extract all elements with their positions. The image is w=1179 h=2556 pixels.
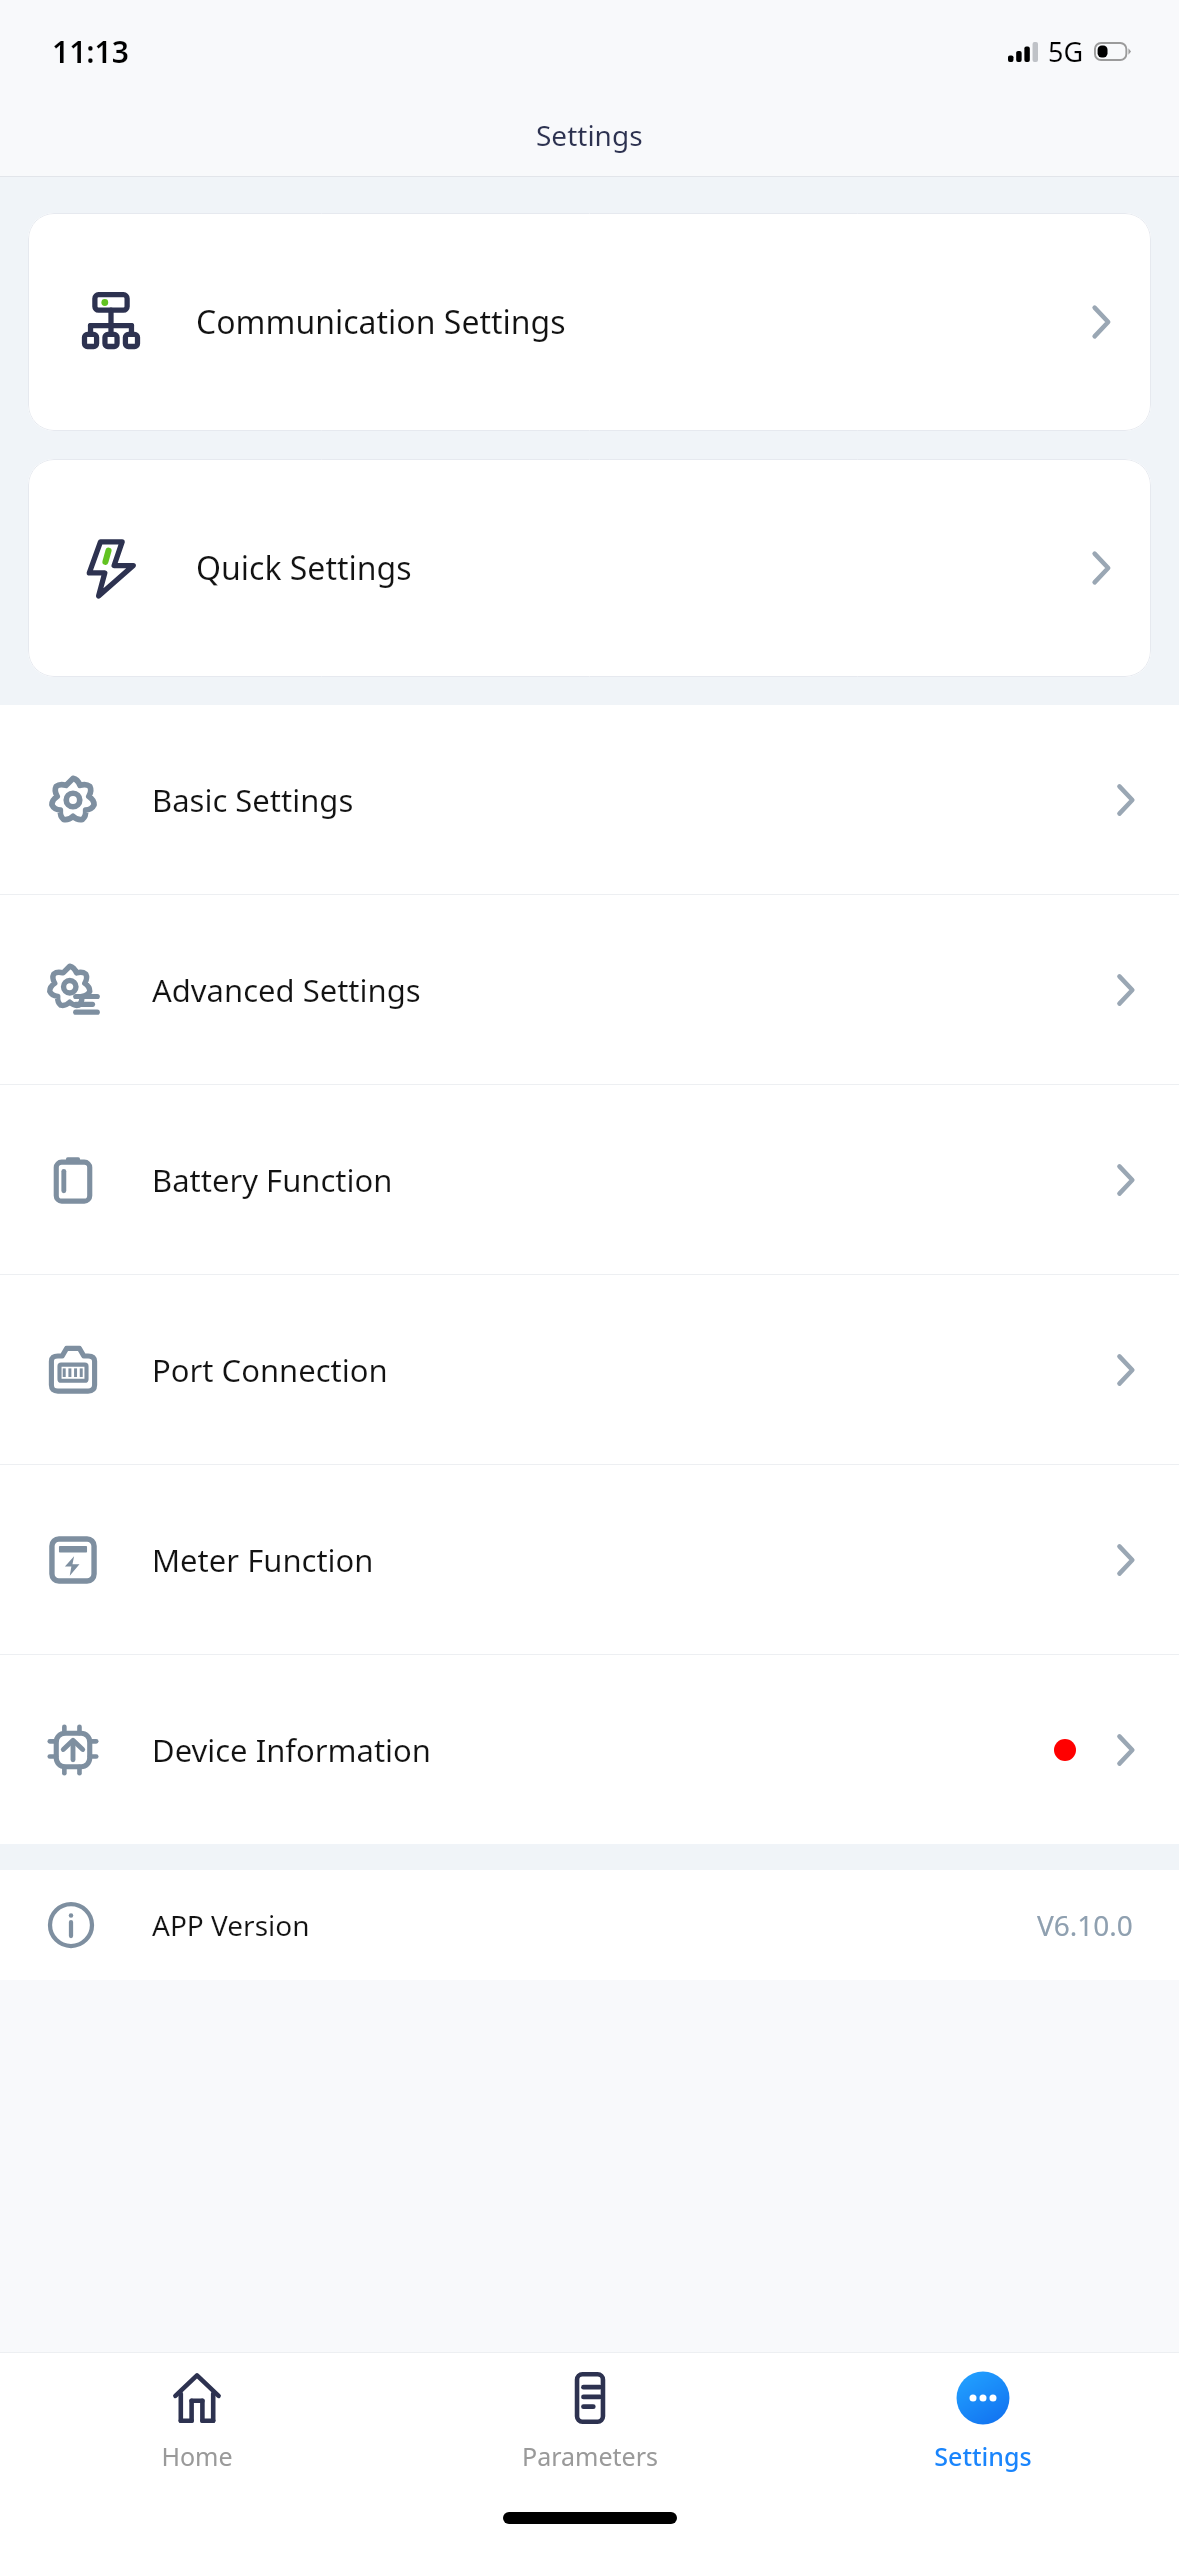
staticText: Communication Settings [196,300,566,344]
button[interactable]: Basic Settings [0,705,1179,894]
button[interactable]: Device Information [0,1655,1179,1844]
staticText: Home [161,2439,233,2473]
staticText: Basic Settings [152,779,354,821]
button[interactable]: Settings [786,2353,1179,2496]
staticText: Parameters [522,2439,658,2473]
staticText: Advanced Settings [152,969,421,1011]
staticText: Quick Settings [196,546,412,590]
staticText: Port Connection [152,1349,388,1391]
staticText: Battery Function [152,1159,393,1201]
staticText: Settings [934,2439,1032,2473]
staticText: V6.10.0 [1037,1906,1133,1944]
button[interactable]: Port Connection [0,1275,1179,1464]
button[interactable]: Meter Function [0,1465,1179,1654]
staticText: APP Version [152,1906,310,1944]
button[interactable]: APP Version [0,1870,1179,1980]
staticText: Meter Function [152,1539,374,1581]
button[interactable]: Parameters [393,2353,786,2496]
staticText: 11:13 [52,31,129,72]
staticText: 5G [1048,33,1084,70]
button[interactable]: Battery Function [0,1085,1179,1274]
button[interactable]: Advanced Settings [0,895,1179,1084]
button[interactable]: Home [0,2353,393,2496]
staticText: Device Information [152,1729,432,1771]
staticText: Settings [536,116,643,154]
button[interactable]: Communication Settings [28,213,1151,431]
button[interactable]: Quick Settings [28,459,1151,677]
